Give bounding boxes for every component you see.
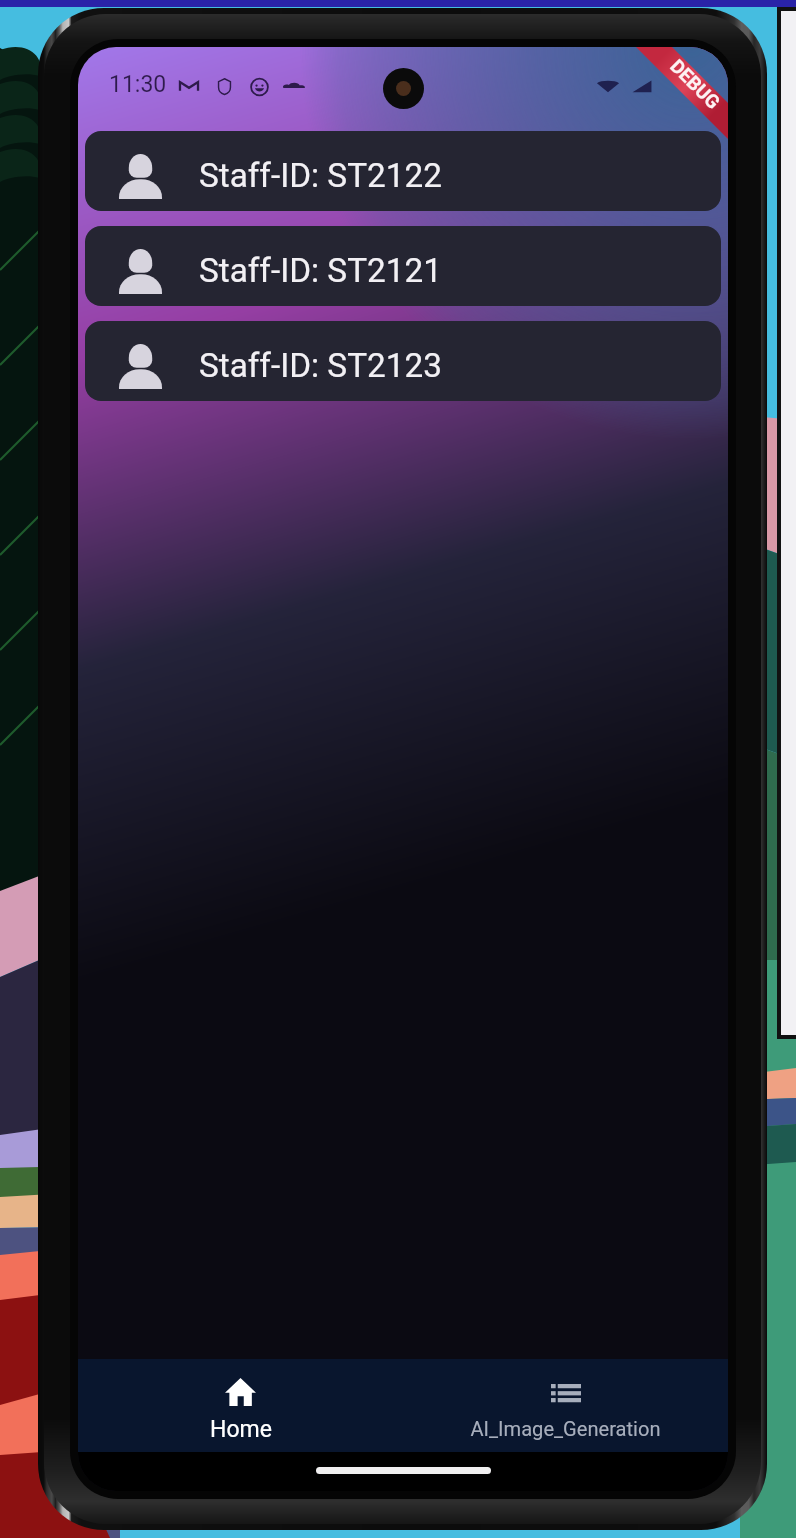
button[interactable]: Staff-ID: ST2123 [85,321,721,401]
staticText: Staff-ID: ST2122 [199,156,442,195]
staticText: AI_Image_Generation [470,1417,661,1441]
staticText: 11:30 [109,71,167,98]
staticText: Home [210,1416,272,1443]
button[interactable]: Home [78,1359,403,1452]
button[interactable]: AI_Image_Generation [403,1359,728,1452]
button[interactable]: Staff-ID: ST2121 [85,226,721,306]
staticText: DEBUG [666,55,725,113]
staticText: Staff-ID: ST2123 [199,346,442,385]
button[interactable]: Staff-ID: ST2122 [85,131,721,211]
staticText: Staff-ID: ST2121 [199,251,442,290]
